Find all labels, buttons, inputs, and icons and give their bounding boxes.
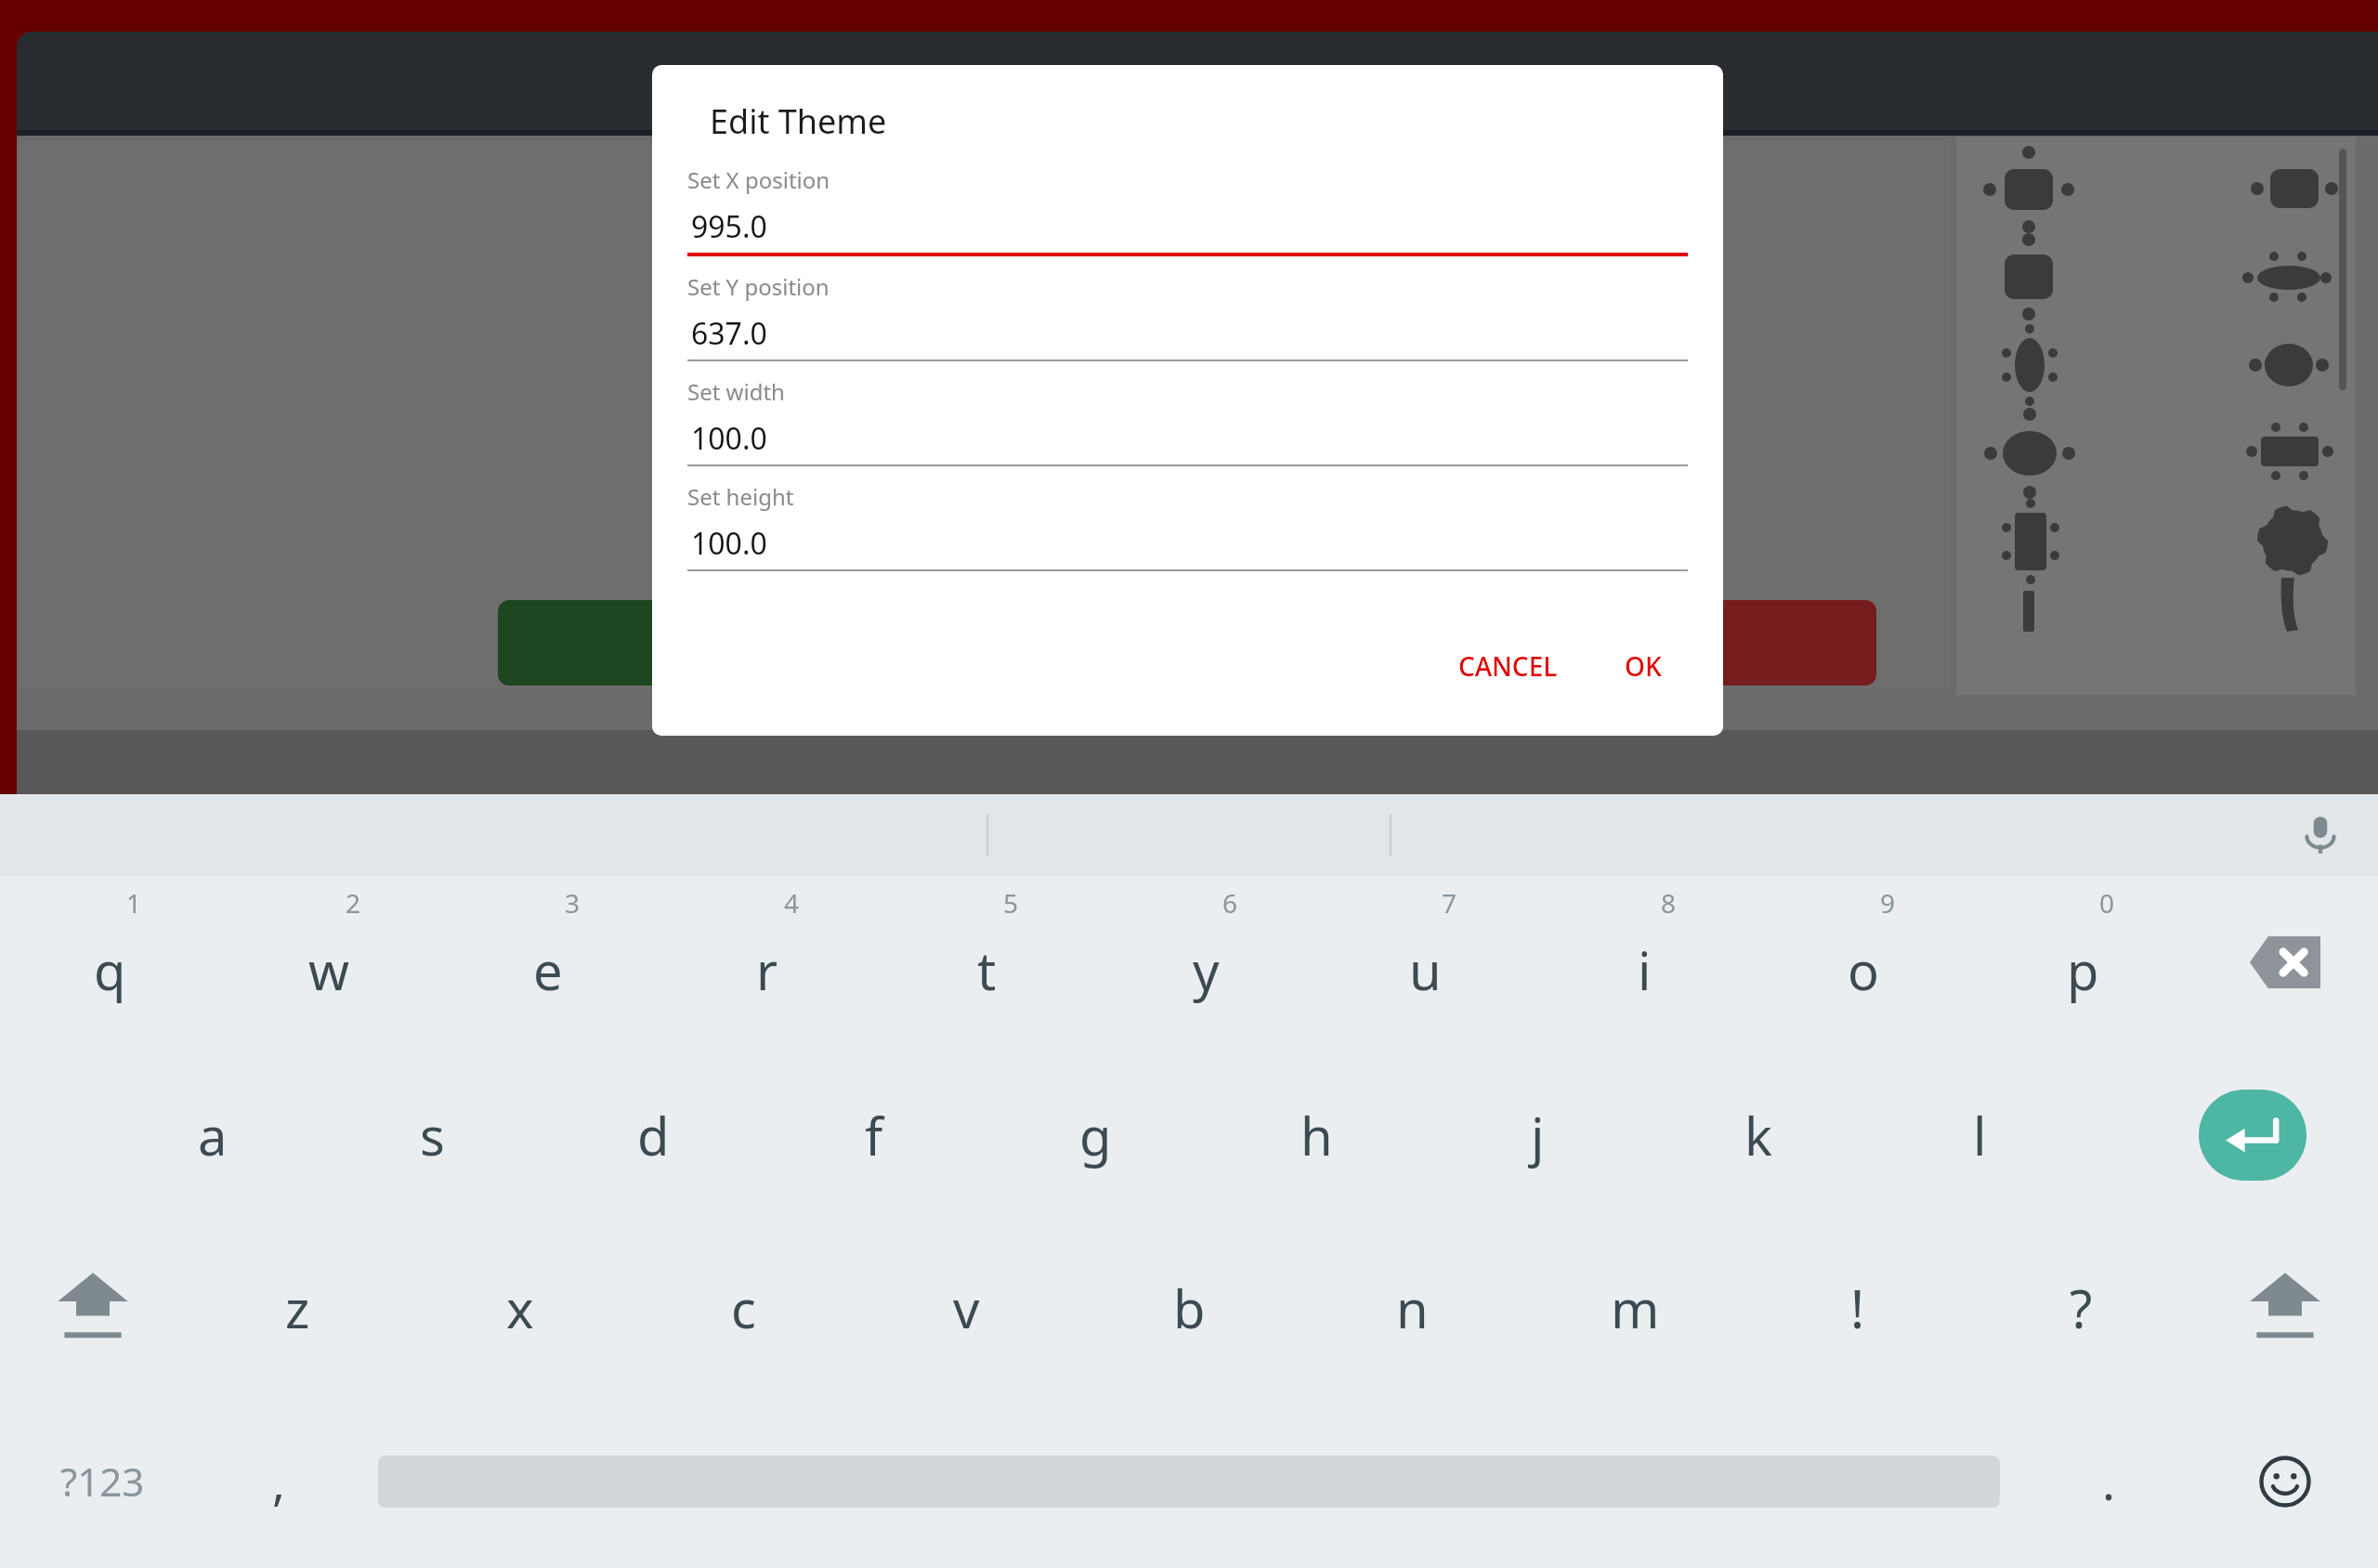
staticText: . bbox=[2102, 1448, 2115, 1514]
button[interactable]: 8 bbox=[1535, 876, 1754, 1049]
staticText: p bbox=[2067, 934, 2099, 1005]
button[interactable]: Shift bbox=[0, 1222, 186, 1394]
staticText: b bbox=[1173, 1273, 1206, 1343]
staticText: Set Y position bbox=[687, 271, 830, 302]
staticText: v bbox=[953, 1273, 980, 1343]
staticText: 100.0 bbox=[691, 523, 767, 564]
button[interactable]: Shift bbox=[2192, 1222, 2378, 1394]
button[interactable]: h bbox=[1206, 1049, 1427, 1222]
button[interactable]: OK bbox=[1612, 641, 1675, 691]
button[interactable]: Voice input bbox=[2283, 798, 2358, 872]
button[interactable]: Set height bbox=[687, 481, 1688, 586]
staticText: z bbox=[285, 1273, 310, 1343]
staticText: 5 bbox=[1003, 885, 1019, 921]
staticText: d bbox=[637, 1100, 670, 1170]
button[interactable]: f bbox=[764, 1049, 985, 1222]
button[interactable]: b bbox=[1078, 1222, 1300, 1394]
button[interactable]: 5 bbox=[877, 876, 1096, 1049]
button[interactable]: , bbox=[204, 1394, 353, 1568]
button[interactable]: ? bbox=[1969, 1222, 2192, 1394]
staticText: ?123 bbox=[60, 1455, 145, 1508]
staticText: Set X position bbox=[687, 164, 830, 195]
staticText: x bbox=[506, 1273, 534, 1343]
button[interactable]: 0 bbox=[1973, 876, 2192, 1049]
staticText: m bbox=[1611, 1273, 1660, 1343]
staticText: y bbox=[1193, 934, 1220, 1005]
staticText: e bbox=[533, 934, 563, 1005]
staticText: k bbox=[1744, 1100, 1772, 1170]
button[interactable]: j bbox=[1427, 1049, 1648, 1222]
staticText: u bbox=[1409, 934, 1442, 1005]
staticText: l bbox=[1973, 1100, 1987, 1170]
staticText: o bbox=[1848, 934, 1879, 1005]
button[interactable]: 4 bbox=[658, 876, 877, 1049]
staticText: 3 bbox=[565, 885, 581, 921]
staticText: 1 bbox=[126, 885, 142, 921]
staticText: 6 bbox=[1222, 885, 1238, 921]
staticText: 995.0 bbox=[691, 206, 767, 247]
button[interactable]: v bbox=[855, 1222, 1078, 1394]
staticText: OK bbox=[1625, 648, 1662, 684]
staticText: a bbox=[198, 1100, 228, 1170]
staticText: 100.0 bbox=[691, 418, 767, 459]
button[interactable]: 2 bbox=[219, 876, 438, 1049]
staticText: ! bbox=[1850, 1273, 1865, 1343]
staticText: Edit Theme bbox=[710, 98, 887, 144]
button[interactable]: CANCEL bbox=[1445, 641, 1571, 691]
button[interactable]: 3 bbox=[438, 876, 658, 1049]
staticText: n bbox=[1396, 1273, 1429, 1343]
staticText: f bbox=[865, 1100, 883, 1170]
button[interactable]: 7 bbox=[1315, 876, 1535, 1049]
button[interactable]: x bbox=[409, 1222, 632, 1394]
button[interactable]: Emoji bbox=[2192, 1394, 2378, 1568]
staticText: t bbox=[977, 934, 997, 1005]
button[interactable]: 6 bbox=[1096, 876, 1315, 1049]
button[interactable]: k bbox=[1648, 1049, 1869, 1222]
staticText: 9 bbox=[1880, 885, 1896, 921]
button[interactable]: 1 bbox=[0, 876, 219, 1049]
button[interactable]: Space bbox=[353, 1394, 2025, 1568]
staticText: ? bbox=[2070, 1273, 2093, 1343]
staticText: 8 bbox=[1661, 885, 1677, 921]
button[interactable]: s bbox=[322, 1049, 542, 1222]
staticText: g bbox=[1079, 1100, 1112, 1170]
staticText: Set width bbox=[687, 376, 785, 407]
staticText: 637.0 bbox=[691, 313, 767, 354]
button[interactable]: Backspace bbox=[2192, 876, 2378, 1049]
button[interactable]: l bbox=[1869, 1049, 2090, 1222]
button[interactable]: . bbox=[2025, 1394, 2192, 1568]
button[interactable]: g bbox=[985, 1049, 1206, 1222]
button[interactable]: Set X position bbox=[687, 164, 1688, 271]
button[interactable]: CANCEL bbox=[1427, 600, 1876, 686]
button[interactable]: d bbox=[542, 1049, 764, 1222]
button[interactable]: Set Y position bbox=[687, 271, 1688, 376]
button[interactable]: ! bbox=[1746, 1222, 1969, 1394]
button[interactable]: Set width bbox=[687, 376, 1688, 481]
staticText: i bbox=[1638, 934, 1652, 1005]
staticText: r bbox=[756, 934, 778, 1005]
staticText: Set height bbox=[687, 481, 794, 512]
staticText: , bbox=[272, 1448, 285, 1514]
staticText: CANCEL bbox=[1458, 648, 1558, 684]
staticText: h bbox=[1300, 1100, 1333, 1170]
button[interactable]: 9 bbox=[1754, 876, 1973, 1049]
staticText: CANCEL bbox=[1599, 624, 1705, 662]
staticText: c bbox=[731, 1273, 756, 1343]
staticText: 4 bbox=[784, 885, 800, 921]
staticText: 0 bbox=[2099, 885, 2115, 921]
button[interactable]: ACCEPT bbox=[498, 600, 947, 686]
staticText: 7 bbox=[1442, 885, 1457, 921]
button[interactable]: n bbox=[1300, 1222, 1523, 1394]
button[interactable]: ?123 bbox=[0, 1394, 204, 1568]
staticText: w bbox=[308, 934, 350, 1005]
button[interactable]: a bbox=[102, 1049, 322, 1222]
button[interactable]: Enter bbox=[2127, 1049, 2378, 1222]
button[interactable]: c bbox=[632, 1222, 855, 1394]
staticText: q bbox=[94, 934, 126, 1005]
button[interactable]: m bbox=[1523, 1222, 1746, 1394]
staticText: 2 bbox=[346, 885, 361, 921]
staticText: s bbox=[420, 1100, 445, 1170]
staticText: j bbox=[1531, 1100, 1545, 1170]
button[interactable]: z bbox=[186, 1222, 409, 1394]
